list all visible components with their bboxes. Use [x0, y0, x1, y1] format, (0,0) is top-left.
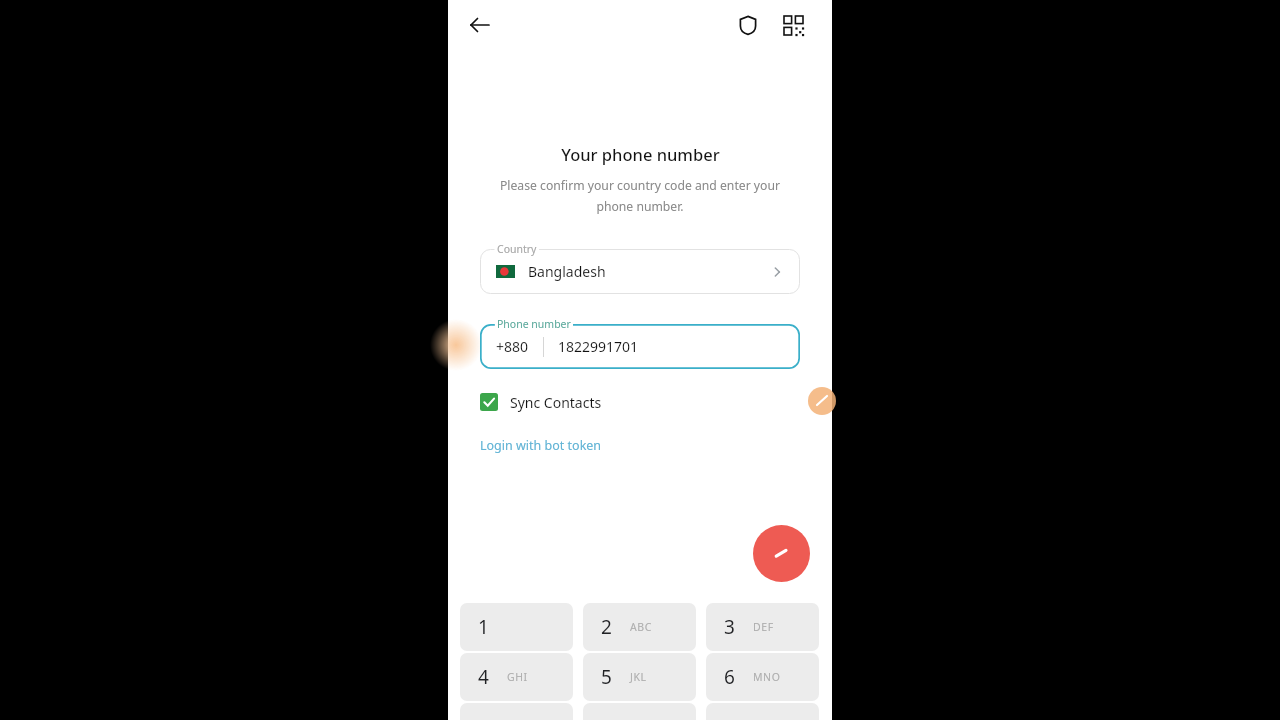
- button[interactable]: 3: [706, 603, 819, 651]
- button[interactable]: 5: [583, 653, 696, 701]
- staticText: JKL: [630, 670, 647, 684]
- button[interactable]: 2: [583, 603, 696, 651]
- staticText: ABC: [630, 620, 652, 634]
- button[interactable]: Privacy: [732, 9, 764, 41]
- button[interactable]: Login with bot token: [480, 437, 602, 454]
- staticText: Country: [497, 242, 537, 256]
- staticText: Your phone number: [561, 143, 720, 165]
- button[interactable]: Phone number: [480, 324, 800, 369]
- staticText: 1: [478, 614, 489, 640]
- button[interactable]: 1: [460, 603, 573, 651]
- staticText: Phone number: [497, 317, 571, 331]
- staticText: MNO: [753, 670, 781, 684]
- button[interactable]: Back: [464, 9, 496, 41]
- staticText: 4: [478, 664, 489, 690]
- button[interactable]: Next: [753, 525, 810, 582]
- button[interactable]: Sync Contacts: [480, 391, 602, 413]
- staticText: DEF: [753, 620, 774, 634]
- button[interactable]: Country: [480, 249, 800, 294]
- staticText: Login with bot token: [480, 437, 602, 454]
- staticText: 6: [724, 664, 735, 690]
- staticText: Please confirm your country code and ent…: [498, 177, 782, 215]
- button[interactable]: 4: [460, 653, 573, 701]
- staticText: Bangladesh: [528, 262, 606, 281]
- staticText: 3: [724, 614, 735, 640]
- staticText: +880: [496, 337, 529, 356]
- staticText: Sync Contacts: [510, 393, 602, 412]
- staticText: 2: [601, 614, 612, 640]
- staticText: GHI: [507, 670, 528, 684]
- button[interactable]: 6: [706, 653, 819, 701]
- button[interactable]: Scan QR code: [777, 9, 809, 41]
- staticText: 1822991701: [558, 337, 639, 356]
- staticText: 5: [601, 664, 612, 690]
